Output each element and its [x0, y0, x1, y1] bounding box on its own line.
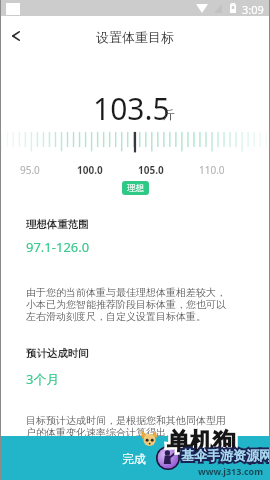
staticText: 理想体重范围 — [26, 218, 89, 231]
staticText: 单机狗 — [167, 427, 236, 456]
button[interactable]: Back — [1, 21, 31, 51]
staticText: 基伞手游资源网 — [181, 447, 270, 463]
button[interactable]: 完成 — [0, 436, 270, 480]
staticText: 理想 — [127, 183, 144, 194]
staticText: 100.0 — [77, 163, 103, 175]
staticText: 97.1-126.0 — [26, 238, 90, 256]
staticText: 基伞手游资源网 — [181, 447, 270, 463]
staticText: www.j313.com — [198, 465, 263, 477]
staticText: 设置体重目标 — [96, 29, 174, 45]
staticText: 预计达成时间 — [26, 347, 89, 360]
staticText: 103.5 — [93, 88, 170, 129]
staticText: 目标预计达成时间，是根据您和其他同体型用户的体重变化速率综合计算得出。 — [26, 414, 227, 439]
staticText: 完成 — [122, 452, 146, 467]
staticText: 由于您的当前体重与最佳理想体重相差较大，小本已为您智能推荐阶段目标体重，您也可以… — [26, 286, 227, 323]
staticText: 95.0 — [20, 163, 40, 175]
staticText: 110.0 — [199, 163, 225, 175]
staticText: 3个月 — [26, 370, 60, 388]
staticText: 3:09 — [242, 2, 264, 17]
button[interactable]: 理想 — [122, 181, 149, 195]
staticText: 105.0 — [138, 163, 164, 175]
staticText: 斤 — [163, 107, 175, 122]
staticText: 单机狗 — [167, 427, 236, 456]
